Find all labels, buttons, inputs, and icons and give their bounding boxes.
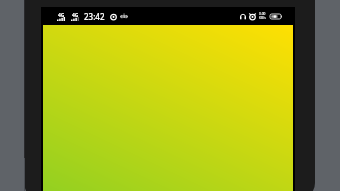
other: Alarm set bbox=[249, 13, 256, 20]
other: Headphones connected bbox=[240, 13, 246, 20]
staticText: 23:42 bbox=[84, 11, 105, 22]
other: Battery level bbox=[270, 14, 282, 19]
other: Ringer set to vibrate bbox=[120, 13, 128, 20]
other: Alarm set bbox=[110, 13, 117, 20]
staticText: KB/s bbox=[259, 16, 266, 20]
other: 4G mobile signal bbox=[57, 13, 65, 21]
button[interactable]: 4G mobile signal bbox=[41, 7, 295, 191]
other: 4G mobile signal bbox=[71, 13, 79, 21]
staticText: 0.00 bbox=[259, 12, 266, 16]
staticText: 4G bbox=[72, 12, 79, 19]
staticText: 4G bbox=[58, 12, 65, 19]
